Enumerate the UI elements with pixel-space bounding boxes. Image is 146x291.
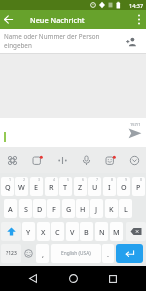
button[interactable] (50, 147, 74, 173)
button[interactable]: S (19, 199, 32, 218)
button[interactable]: Q (1, 177, 14, 196)
staticText: M (113, 227, 120, 237)
staticText: L (124, 204, 128, 214)
staticText: 4 (53, 177, 56, 182)
button[interactable]: H (76, 199, 89, 218)
staticText: O (121, 182, 127, 192)
staticText: W (18, 182, 25, 192)
button[interactable]: K (105, 199, 118, 218)
staticText: 157/1 (130, 122, 141, 127)
button[interactable]: F (47, 199, 60, 218)
staticText: 1 (9, 177, 12, 182)
button[interactable] (25, 147, 50, 173)
staticText: P (136, 182, 141, 192)
staticText: A (8, 204, 13, 214)
staticText: 6 (82, 177, 85, 182)
button[interactable]: English (USA) (51, 244, 101, 263)
button[interactable]: V (66, 222, 79, 241)
button[interactable]: T (59, 177, 72, 196)
staticText: 2 (23, 177, 26, 182)
staticText: Name oder Nummer der Person (4, 32, 100, 41)
staticText: 8 (111, 177, 114, 182)
button[interactable]: , (36, 244, 49, 263)
button[interactable]: O (117, 177, 130, 196)
staticText: eingeben (4, 41, 32, 50)
staticText: J (95, 204, 98, 214)
button[interactable]: Z (74, 177, 87, 196)
staticText: 14:37 (129, 2, 144, 9)
staticText: I (108, 182, 111, 192)
button[interactable]: Name oder Nummer der Person (0, 29, 146, 54)
staticText: 9 (125, 177, 128, 182)
button[interactable]: P (132, 177, 145, 196)
staticText: U (92, 182, 98, 192)
button[interactable] (74, 147, 98, 173)
staticText: K (109, 204, 114, 214)
button[interactable]: I (103, 177, 116, 196)
button[interactable] (126, 222, 146, 241)
staticText: ?123 (6, 250, 17, 257)
button[interactable]: E (30, 177, 43, 196)
staticText: . (107, 249, 109, 259)
button[interactable]: Y (22, 222, 35, 241)
button[interactable] (24, 266, 42, 291)
staticText: 3 (38, 177, 41, 182)
button[interactable] (1, 222, 21, 241)
button[interactable]: X (37, 222, 50, 241)
button[interactable]: U (88, 177, 101, 196)
button[interactable] (98, 147, 122, 173)
button[interactable]: . (102, 244, 114, 263)
staticText: N (99, 227, 105, 237)
staticText: T (63, 182, 68, 192)
staticText: R (49, 182, 54, 192)
button[interactable]: J (90, 199, 103, 218)
staticText: Neue Nachricht (30, 15, 85, 25)
staticText: V (70, 227, 75, 237)
button[interactable]: G (62, 199, 75, 218)
button[interactable] (116, 244, 143, 263)
button[interactable]: M (110, 222, 123, 241)
button[interactable] (132, 10, 146, 29)
staticText: F (52, 204, 56, 214)
button[interactable]: B (80, 222, 93, 241)
staticText: Z (78, 182, 83, 192)
button[interactable]: W (15, 177, 28, 196)
staticText: G (66, 204, 72, 214)
staticText: E (34, 182, 39, 192)
button[interactable]: N (95, 222, 108, 241)
staticText: English (USA) (61, 250, 91, 257)
staticText: 7 (96, 177, 99, 182)
button[interactable]: ?123 (1, 244, 21, 263)
staticText: Q (5, 182, 11, 192)
button[interactable] (0, 10, 16, 29)
button[interactable] (0, 147, 25, 173)
button[interactable] (104, 266, 122, 291)
staticText: Y (26, 227, 31, 237)
staticText: H (80, 204, 86, 214)
button[interactable] (128, 128, 142, 139)
button[interactable]: A (4, 199, 17, 218)
staticText: , (42, 249, 44, 259)
staticText: X (41, 227, 46, 237)
button[interactable]: C (51, 222, 64, 241)
staticText: 0 (140, 177, 143, 182)
staticText: 5 (67, 177, 70, 182)
button[interactable] (122, 147, 146, 173)
button[interactable] (64, 266, 82, 291)
button[interactable]: L (119, 199, 132, 218)
staticText: D (37, 204, 43, 214)
button[interactable]: D (33, 199, 46, 218)
staticText: C (55, 227, 60, 237)
button[interactable]: R (45, 177, 58, 196)
button[interactable] (22, 244, 35, 263)
staticText: S (24, 204, 28, 214)
staticText: B (84, 227, 89, 237)
